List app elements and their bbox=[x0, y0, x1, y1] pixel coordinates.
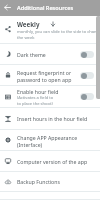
staticText: (Interface) bbox=[17, 141, 43, 148]
button[interactable]: Toggle bbox=[80, 72, 94, 79]
button[interactable]: Configure Widgets on... bbox=[0, 192, 100, 200]
staticText: to place the shoot) bbox=[17, 101, 53, 107]
staticText: password to open app bbox=[17, 76, 72, 83]
staticText: Request fingerprint or bbox=[17, 69, 72, 76]
staticText: Additional Resources bbox=[17, 4, 74, 12]
staticText: Insert hours in the hour field bbox=[17, 115, 88, 122]
staticText: Computer version of the app bbox=[17, 158, 88, 165]
button[interactable]: Backup Functions bbox=[0, 172, 100, 192]
button[interactable]: Dark theme bbox=[0, 44, 100, 65]
staticText: Change APP Appearance bbox=[17, 134, 78, 141]
button[interactable]: Change APP Appearance bbox=[0, 130, 100, 151]
button[interactable]: Expand bbox=[50, 21, 56, 27]
staticText: Backup Functions bbox=[17, 178, 60, 185]
button[interactable]: Request fingerprint or bbox=[0, 65, 100, 86]
staticText: monthly, you can slide to the side to ch… bbox=[17, 29, 100, 35]
staticText: the week bbox=[17, 35, 35, 41]
button[interactable]: Computer version of the app bbox=[0, 151, 100, 172]
button[interactable]: Back bbox=[3, 3, 12, 12]
button[interactable]: Toggle bbox=[80, 93, 94, 100]
staticText: Weekly bbox=[17, 20, 40, 28]
button[interactable]: Weekly bbox=[0, 16, 100, 44]
button[interactable]: Toggle bbox=[80, 51, 94, 58]
staticText: Enable hour field bbox=[17, 88, 59, 95]
staticText: Configure Widgets on... bbox=[17, 198, 75, 200]
button[interactable]: Enable hour field bbox=[0, 86, 100, 108]
staticText: (Activates a field to bbox=[17, 95, 54, 101]
button[interactable]: Insert hours in the hour field bbox=[0, 108, 100, 130]
staticText: Dark theme bbox=[17, 51, 46, 58]
